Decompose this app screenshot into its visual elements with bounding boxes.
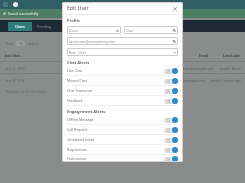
staticText: Chat Transcript	[67, 88, 92, 93]
staticText: ON	[166, 119, 170, 123]
staticText: First Name	[158, 53, 177, 58]
staticText: User	[126, 28, 134, 33]
button[interactable]: Pending	[32, 22, 56, 31]
button[interactable]: Feedback	[67, 96, 178, 105]
staticText: carlos@example.com	[172, 78, 205, 82]
staticText: ON	[166, 90, 170, 94]
staticText: 10	[19, 42, 23, 46]
staticText: Registration	[67, 147, 87, 152]
button[interactable]: Missed Chat	[67, 76, 178, 85]
staticText: Saved successfully	[8, 11, 39, 16]
button[interactable]: User	[124, 26, 178, 34]
staticText: Chat Alerts	[67, 60, 90, 65]
staticText: ON	[166, 149, 170, 153]
staticText: Engagement Alerts	[67, 109, 106, 114]
staticText: ON	[166, 100, 170, 104]
button[interactable]: Call Request	[67, 125, 178, 134]
staticText: Last Login	[223, 53, 241, 58]
staticText: Search	[28, 41, 39, 46]
staticText: Scheduled Event	[67, 137, 95, 142]
staticText: about 1 month ago	[211, 78, 241, 82]
button[interactable]: Users	[8, 22, 32, 31]
staticText: ON	[166, 158, 170, 162]
staticText: ON	[166, 129, 170, 133]
button[interactable]: Testimonial	[67, 155, 178, 162]
staticText: devin.user@exampleorg.com	[69, 39, 116, 44]
staticText: Feedback	[67, 98, 83, 103]
button[interactable]: Devin	[67, 26, 121, 34]
staticText: Offline Message	[67, 117, 94, 122]
staticText: Role : User	[69, 50, 87, 55]
staticText: Devin	[69, 28, 79, 33]
staticText: Sep 14, 2018	[5, 66, 25, 70]
button[interactable]: devin.user@exampleorg.com	[67, 37, 178, 45]
staticText: Profile	[67, 18, 81, 23]
button[interactable]: Sep 14, 2018	[0, 62, 245, 73]
staticText: devin@example.com	[181, 66, 214, 70]
staticText: Testimonial	[67, 156, 86, 161]
button[interactable]: Role : User	[67, 48, 178, 56]
staticText: Users	[15, 24, 25, 29]
staticText: Edit User	[67, 5, 89, 12]
staticText: Pending	[37, 24, 51, 29]
staticText: Live Chat	[67, 68, 83, 73]
staticText: ON	[166, 139, 170, 143]
button[interactable]: Live Chat	[67, 66, 178, 75]
staticText: Missed Chat	[67, 78, 88, 83]
staticText: Sep 08, 2018	[5, 78, 25, 82]
staticText: profile. David	[220, 66, 241, 70]
staticText: Call Request	[67, 127, 88, 132]
button[interactable]: Chat Transcript	[67, 86, 178, 95]
staticText: Join Date	[5, 53, 21, 58]
button[interactable]: Sep 08, 2018	[0, 74, 245, 85]
button[interactable]: Offline Message	[67, 115, 178, 124]
staticText: Showing 1 to 10 of 2 entries	[5, 90, 47, 94]
button[interactable]: Scheduled Event	[67, 135, 178, 144]
button[interactable]: Registration	[67, 145, 178, 154]
button[interactable]: Close dialog	[171, 5, 178, 12]
button[interactable]: 10	[16, 41, 25, 46]
staticText: ON	[166, 70, 170, 74]
staticText: ON	[166, 80, 170, 84]
staticText: Email	[199, 53, 209, 58]
button[interactable]: Help	[13, 2, 18, 7]
staticText: Show	[5, 41, 14, 46]
